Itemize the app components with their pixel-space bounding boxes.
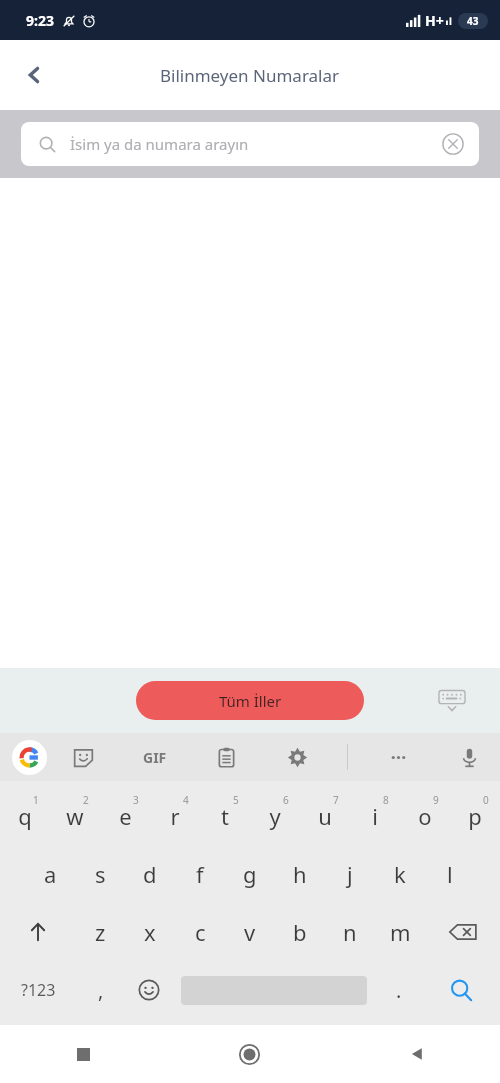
staticText: 9:23 <box>26 11 54 30</box>
button[interactable]: w <box>50 787 100 845</box>
button[interactable]: e <box>100 787 150 845</box>
button[interactable]: Settings <box>276 736 318 778</box>
button[interactable]: Google <box>8 736 50 778</box>
staticText: f <box>196 859 204 889</box>
staticText: n <box>343 917 357 947</box>
staticText: 1 <box>33 793 39 807</box>
button[interactable]: y <box>250 787 300 845</box>
staticText: p <box>468 801 482 831</box>
button[interactable]: Search <box>423 961 500 1019</box>
button[interactable]: i <box>350 787 400 845</box>
button[interactable]: u <box>300 787 350 845</box>
staticText: v <box>244 917 256 947</box>
staticText: 8 <box>383 793 389 807</box>
button[interactable]: d <box>125 845 175 903</box>
staticText: 9 <box>433 793 439 807</box>
staticText: . <box>396 977 402 1004</box>
staticText: t <box>221 801 229 831</box>
staticText: m <box>390 917 411 947</box>
button[interactable]: m <box>375 903 425 961</box>
staticText: y <box>269 801 281 831</box>
button[interactable]: İsim ya da numara arayın <box>21 122 479 166</box>
button[interactable]: , <box>77 961 125 1019</box>
staticText: 43 <box>467 14 479 28</box>
staticText: i <box>372 801 378 831</box>
staticText: x <box>144 917 156 947</box>
staticText: g <box>243 859 257 889</box>
staticText: k <box>394 859 406 889</box>
staticText: l <box>447 859 453 889</box>
button[interactable]: Tüm İller <box>136 681 364 720</box>
button[interactable]: b <box>275 903 325 961</box>
staticText: Bilinmeyen Numaralar <box>160 64 340 87</box>
button[interactable]: Back <box>10 51 58 99</box>
button[interactable]: z <box>75 903 125 961</box>
staticText: Tüm İller <box>219 691 282 711</box>
button[interactable]: v <box>225 903 275 961</box>
staticText: 7 <box>333 793 339 807</box>
staticText: a <box>44 859 57 889</box>
staticText: j <box>347 859 353 889</box>
button[interactable]: r <box>150 787 200 845</box>
button[interactable]: Backspace <box>425 903 500 961</box>
staticText: s <box>95 859 106 889</box>
staticText: 0 <box>483 793 489 807</box>
staticText: d <box>143 859 157 889</box>
button[interactable]: h <box>275 845 325 903</box>
staticText: h <box>293 859 307 889</box>
staticText: c <box>195 917 206 947</box>
staticText: z <box>95 917 106 947</box>
button[interactable]: q <box>0 787 50 845</box>
button[interactable]: k <box>375 845 425 903</box>
button[interactable]: s <box>75 845 125 903</box>
button[interactable]: More <box>377 736 419 778</box>
button[interactable]: x <box>125 903 175 961</box>
button[interactable]: l <box>425 845 475 903</box>
button[interactable]: Clipboard <box>205 736 247 778</box>
button[interactable]: Recents <box>0 1025 166 1083</box>
button[interactable]: Shift <box>0 903 75 961</box>
button[interactable]: n <box>325 903 375 961</box>
staticText: İsim ya da numara arayın <box>70 134 249 154</box>
button[interactable]: Back <box>333 1025 500 1083</box>
staticText: 5 <box>233 793 239 807</box>
button[interactable]: p <box>450 787 500 845</box>
button[interactable]: Home <box>166 1025 333 1083</box>
staticText: r <box>170 801 180 831</box>
button[interactable]: ?123 <box>0 961 77 1019</box>
button[interactable]: Hide keyboard <box>432 681 472 721</box>
staticText: o <box>418 801 432 831</box>
button[interactable]: Stickers <box>62 736 104 778</box>
staticText: w <box>66 801 84 831</box>
button[interactable]: t <box>200 787 250 845</box>
staticText: ?123 <box>21 979 56 1001</box>
button[interactable]: . <box>375 961 423 1019</box>
staticText: e <box>119 801 132 831</box>
button[interactable]: f <box>175 845 225 903</box>
staticText: 6 <box>283 793 289 807</box>
staticText: GIF <box>143 748 167 767</box>
staticText: 3 <box>133 793 139 807</box>
button[interactable]: g <box>225 845 275 903</box>
button[interactable]: c <box>175 903 225 961</box>
staticText: , <box>98 977 104 1004</box>
staticText: 2 <box>83 793 89 807</box>
staticText: q <box>18 801 32 831</box>
button[interactable]: Voice input <box>448 736 490 778</box>
button[interactable]: Clear <box>433 124 473 164</box>
button[interactable]: o <box>400 787 450 845</box>
staticText: H+ <box>425 11 444 30</box>
staticText: b <box>293 917 307 947</box>
button[interactable]: Space <box>173 961 375 1019</box>
staticText: 4 <box>183 793 189 807</box>
button[interactable]: Emoji <box>125 961 173 1019</box>
button[interactable]: GIF <box>134 736 176 778</box>
staticText: u <box>318 801 332 831</box>
button[interactable]: a <box>25 845 75 903</box>
button[interactable]: j <box>325 845 375 903</box>
